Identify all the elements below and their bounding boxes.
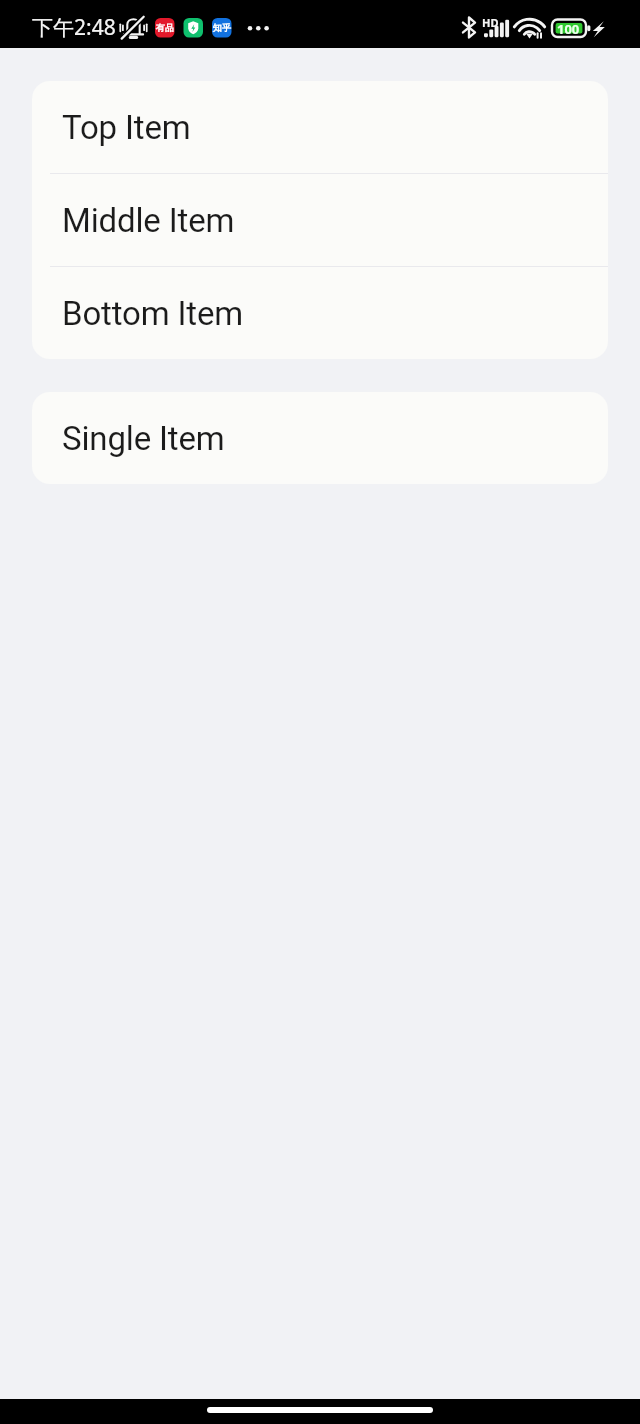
button[interactable]: Top Item [32,81,608,173]
button[interactable]: Middle Item [32,174,608,266]
staticText: 下午2:48 [32,13,116,42]
staticText: Top Item [62,108,191,147]
staticText: Middle Item [62,201,235,240]
button[interactable]: Bottom Item [32,267,608,359]
staticText: Single Item [62,419,225,458]
other: Status icons: silent mode, notifications… [0,0,640,48]
staticText: 知乎 [213,22,231,33]
button[interactable]: Single Item [32,392,608,484]
staticText: 100 [557,20,580,38]
staticText: 有品 [156,22,174,33]
staticText: Bottom Item [62,294,244,333]
staticText: HD [482,15,499,30]
